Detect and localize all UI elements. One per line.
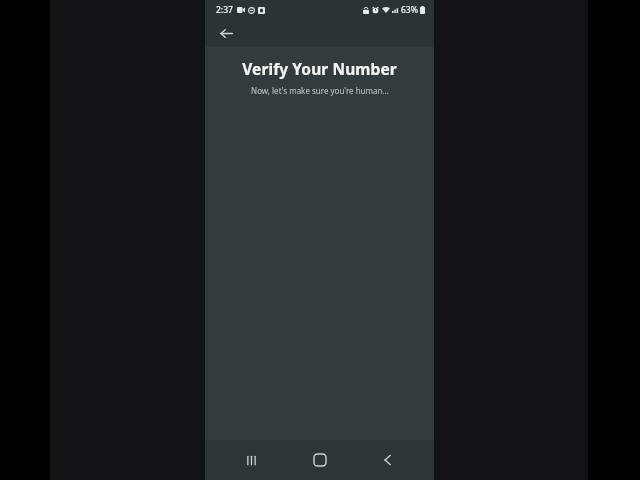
button[interactable]: Recent apps <box>229 440 273 480</box>
button[interactable]: Back <box>366 440 410 480</box>
staticText: 2:37 <box>216 4 233 16</box>
staticText: Verify Your Number <box>242 58 397 79</box>
button[interactable]: Back <box>212 20 240 47</box>
button[interactable]: Home <box>298 440 342 480</box>
staticText: Now, let's make sure you're human... <box>251 85 389 96</box>
staticText: 63% <box>401 4 418 16</box>
